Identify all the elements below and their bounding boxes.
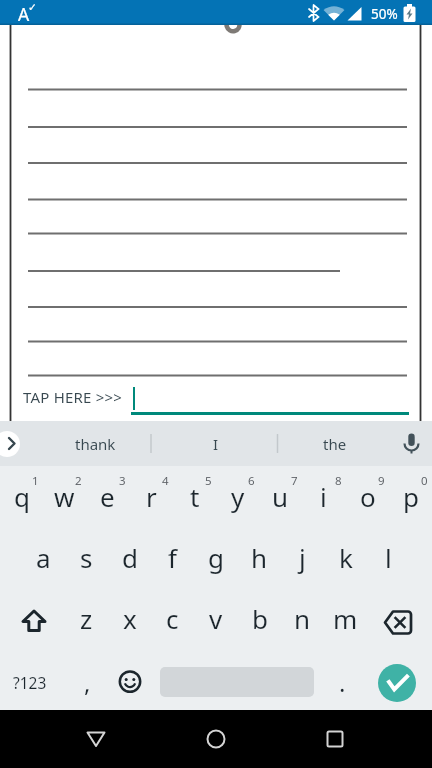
button[interactable]: q [0,466,43,527]
staticText: c [166,601,179,636]
staticText: 2 [75,473,82,489]
staticText: , [84,666,91,699]
button[interactable] [0,588,65,649]
button[interactable]: n [281,588,324,649]
staticText: 5 [205,473,212,489]
staticText: 1 [32,473,39,489]
button[interactable] [0,649,65,710]
staticText: A [18,2,30,26]
button[interactable]: x [108,588,151,649]
button[interactable]: t [173,466,216,527]
staticText: 50% [371,5,398,23]
staticText: 9 [378,473,385,489]
staticText: I [213,434,219,454]
staticText: 0 [421,473,428,489]
button[interactable]: y [216,466,259,527]
button[interactable]: c [151,588,194,649]
staticText: w [54,479,75,514]
button[interactable]: m [324,588,367,649]
button[interactable]: . [321,652,364,713]
button[interactable]: d [108,527,151,588]
staticText: 8 [335,473,342,489]
button[interactable] [378,664,416,702]
staticText: m [333,601,358,636]
staticText: 7 [291,473,298,489]
button[interactable]: a [22,527,65,588]
button[interactable]: r [130,466,173,527]
staticText: y [231,479,245,514]
button[interactable]: I [160,421,272,466]
button[interactable]: b [238,588,281,649]
staticText: d [122,540,138,575]
staticText: s [80,540,93,575]
staticText: u [272,479,289,514]
button[interactable] [0,431,20,457]
button[interactable]: f [151,527,194,588]
staticText: v [209,601,223,636]
staticText: 6 [248,473,255,489]
staticText: ?123 [13,672,47,693]
button[interactable]: the [288,421,382,466]
staticText: j [299,540,306,575]
button[interactable]: u [259,466,302,527]
staticText: 4 [162,473,169,489]
button[interactable]: w [43,466,86,527]
button[interactable] [367,588,432,649]
staticText: z [80,601,93,636]
button[interactable]: TAP HERE >>> [23,387,123,407]
button[interactable] [108,649,151,710]
button[interactable]: e [86,466,129,527]
staticText: the [323,434,347,454]
staticText: o [360,479,376,514]
button[interactable]: k [324,527,367,588]
staticText: h [251,540,268,575]
button[interactable]: i [302,466,345,527]
button[interactable]: z [65,588,108,649]
staticText: b [252,601,268,636]
button[interactable]: , [66,652,109,713]
staticText: 3 [119,473,126,489]
button[interactable]: s [65,527,108,588]
staticText: . [339,666,346,699]
button[interactable]: h [238,527,281,588]
staticText: i [320,479,327,514]
staticText: thank [75,434,116,454]
button[interactable]: j [281,527,324,588]
staticText: ✓ [28,1,37,13]
button[interactable] [66,710,126,768]
staticText: x [123,601,137,636]
button[interactable]: thank [55,421,135,466]
button[interactable] [186,710,246,768]
staticText: a [36,540,51,575]
staticText: f [168,540,177,575]
button[interactable] [390,424,430,464]
staticText: r [146,479,157,514]
button[interactable]: v [194,588,237,649]
staticText: t [190,479,200,514]
staticText: q [14,479,30,514]
staticText: g [208,540,224,575]
button[interactable]: p [389,466,432,527]
staticText: p [403,479,419,514]
staticText: n [294,601,311,636]
staticText: l [385,540,392,575]
staticText: k [339,540,353,575]
button[interactable]: l [367,527,410,588]
button[interactable] [305,710,365,768]
button[interactable]: o [346,466,389,527]
staticText: e [100,479,115,514]
button[interactable]: g [194,527,237,588]
